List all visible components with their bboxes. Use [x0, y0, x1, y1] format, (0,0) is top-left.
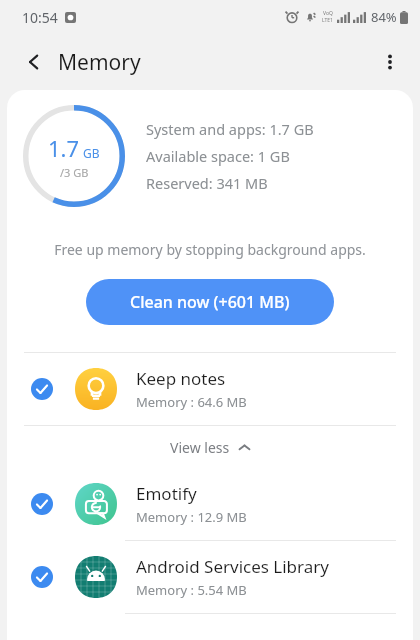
staticText: Free up memory by stopping background ap… — [7, 240, 413, 259]
staticText: Reserved: 341 MB — [146, 173, 268, 193]
staticText: Memory — [58, 48, 141, 77]
staticText: 84% — [371, 8, 397, 26]
staticText: 10:54 — [22, 8, 58, 27]
button[interactable]: More options — [368, 40, 412, 84]
staticText: /3 GB — [60, 165, 89, 180]
staticText: Keep notes — [136, 367, 226, 390]
staticText: Memory : 12.9 MB — [136, 508, 247, 526]
staticText: View less — [170, 438, 230, 457]
staticText: Memory : 64.6 MB — [136, 393, 247, 411]
button[interactable]: Keep notes — [7, 353, 413, 425]
staticText: System and apps: 1.7 GB — [146, 119, 314, 139]
staticText: VoQ — [323, 10, 333, 17]
staticText: Android Services Library — [136, 555, 329, 578]
staticText: Emotify — [136, 482, 197, 505]
staticText: GB — [83, 145, 100, 161]
staticText: Clean now (+601 MB) — [130, 291, 290, 313]
staticText: Available space: 1 GB — [146, 146, 290, 166]
staticText: LTE1 — [322, 17, 333, 24]
button[interactable]: Back — [12, 40, 56, 84]
button[interactable]: Android Services Library — [7, 541, 413, 613]
staticText: Memory : 5.54 MB — [136, 581, 247, 599]
staticText: 1.7 — [48, 133, 80, 163]
button[interactable]: Emotify — [7, 468, 413, 540]
button[interactable]: View less — [7, 426, 413, 468]
button[interactable]: Clean now (+601 MB) — [86, 279, 334, 325]
